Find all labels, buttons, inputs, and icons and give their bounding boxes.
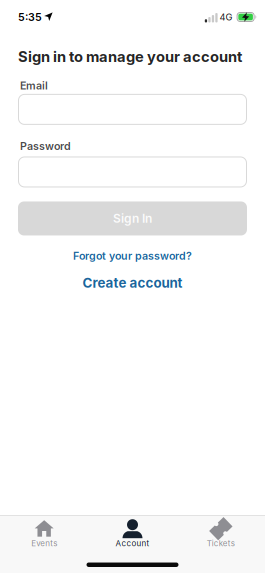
staticText: 4G (220, 11, 233, 22)
button[interactable] (18, 156, 247, 187)
button[interactable]: Create account (82, 275, 182, 291)
staticText: Email (20, 79, 48, 92)
button[interactable] (18, 94, 247, 125)
staticText: Sign In (113, 211, 152, 226)
button[interactable]: Account (88, 520, 177, 548)
staticText: Password (20, 140, 71, 152)
staticText: Account (115, 539, 149, 548)
button[interactable]: Events (0, 520, 88, 548)
staticText: Events (31, 539, 57, 548)
staticText: Forgot your password? (73, 249, 192, 262)
button[interactable]: Sign In (18, 201, 247, 235)
button[interactable]: Forgot your password? (73, 249, 192, 262)
button[interactable]: Tickets (177, 520, 265, 548)
staticText: Tickets (207, 539, 235, 548)
staticText: 5:35 (18, 11, 42, 23)
staticText: Create account (82, 275, 182, 291)
staticText: Sign in to manage your account (18, 48, 242, 65)
